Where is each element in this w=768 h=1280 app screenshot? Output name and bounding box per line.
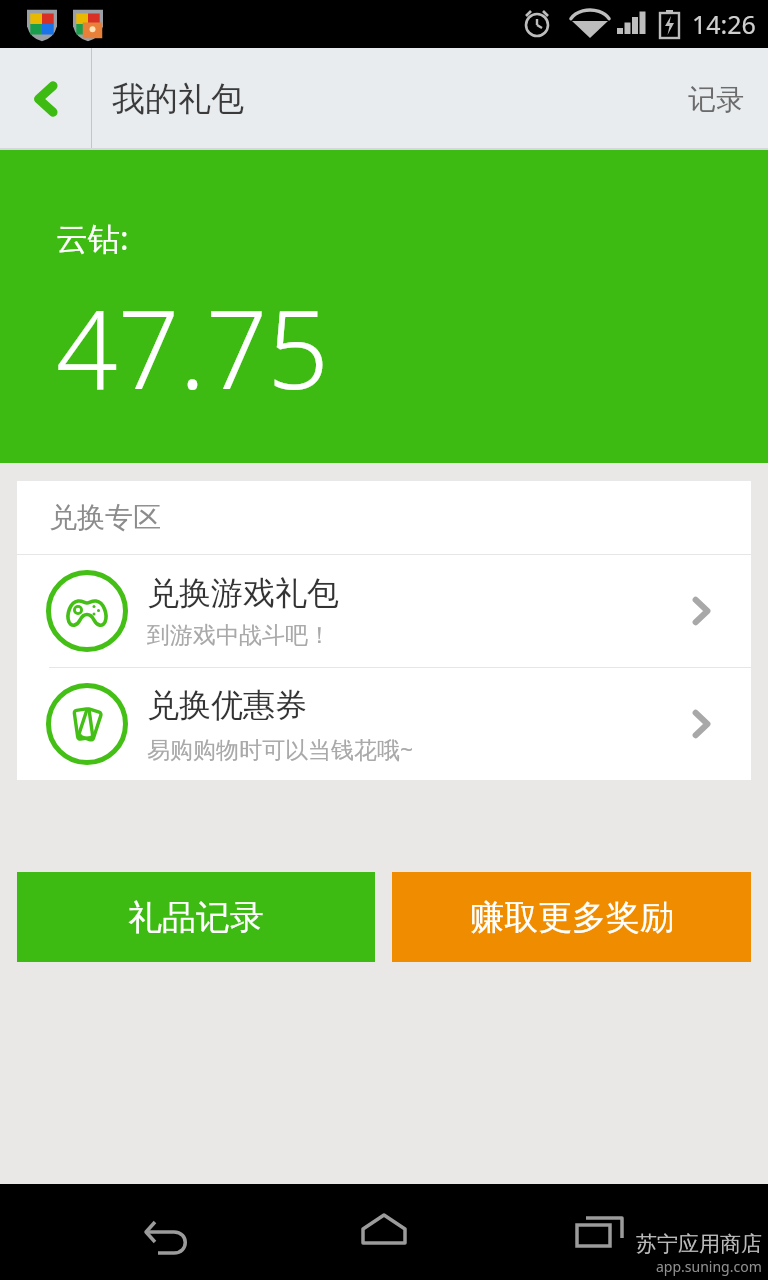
button[interactable]: 礼品记录: [17, 872, 375, 962]
button[interactable]: Back: [0, 48, 91, 150]
button[interactable]: 兑换游戏礼包: [17, 555, 751, 667]
staticText: 礼品记录: [128, 896, 264, 939]
button[interactable]: Back: [120, 1184, 216, 1280]
staticText: 兑换优惠券: [147, 685, 307, 725]
button[interactable]: 赚取更多奖励: [392, 872, 751, 962]
button[interactable]: 兑换优惠券: [17, 668, 751, 780]
staticText: 云钻:: [56, 216, 129, 260]
staticText: app.suning.com: [656, 1257, 762, 1276]
button[interactable]: 记录: [664, 48, 768, 150]
staticText: 兑换游戏礼包: [147, 573, 339, 613]
staticText: 兑换专区: [49, 500, 161, 535]
staticText: 记录: [688, 82, 744, 117]
staticText: 赚取更多奖励: [470, 896, 674, 939]
staticText: 易购购物时可以当钱花哦~: [147, 733, 414, 764]
staticText: 我的礼包: [112, 78, 244, 120]
staticText: 苏宁应用商店: [636, 1231, 762, 1257]
staticText: 到游戏中战斗吧！: [147, 621, 331, 650]
button[interactable]: Home: [336, 1184, 432, 1280]
staticText: 14:26: [692, 7, 756, 41]
staticText: 47.75: [56, 274, 330, 421]
button[interactable]: Recent apps: [552, 1184, 648, 1280]
